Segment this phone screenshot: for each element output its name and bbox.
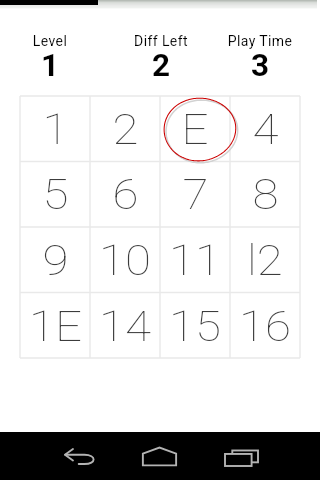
- staticText: 14: [99, 302, 151, 351]
- staticText: 16: [239, 302, 291, 351]
- button[interactable]: 1: [20, 96, 90, 161]
- staticText: 8: [252, 170, 278, 219]
- staticText: 1E: [29, 302, 82, 351]
- button[interactable]: 2: [90, 96, 160, 161]
- button[interactable]: Home: [136, 432, 184, 480]
- staticText: Level: [0, 33, 110, 49]
- staticText: 15: [169, 302, 221, 351]
- button[interactable]: 16: [230, 292, 300, 358]
- button[interactable]: Recent apps: [217, 432, 265, 480]
- staticText: 3: [200, 47, 320, 84]
- staticText: E: [181, 105, 208, 154]
- staticText: l2: [247, 236, 283, 285]
- staticText: 10: [99, 236, 151, 285]
- button[interactable]: Diff Left: [101, 33, 221, 81]
- button[interactable]: 15: [160, 292, 230, 358]
- button[interactable]: Level: [0, 33, 110, 81]
- button[interactable]: 5: [20, 161, 90, 226]
- staticText: 6: [112, 170, 138, 219]
- staticText: 4: [252, 105, 278, 154]
- staticText: Diff Left: [101, 33, 221, 49]
- button[interactable]: 14: [90, 292, 160, 358]
- staticText: 2: [112, 105, 138, 154]
- button[interactable]: 11: [160, 226, 230, 292]
- staticText: 11: [169, 236, 221, 285]
- button[interactable]: Back: [56, 432, 104, 480]
- button[interactable]: l2: [230, 226, 300, 292]
- staticText: 1: [0, 47, 110, 84]
- staticText: 2: [101, 47, 221, 84]
- button[interactable]: 7: [160, 161, 230, 226]
- button[interactable]: 6: [90, 161, 160, 226]
- staticText: 9: [42, 236, 68, 285]
- button[interactable]: 9: [20, 226, 90, 292]
- button[interactable]: 8: [230, 161, 300, 226]
- button[interactable]: 1E: [20, 292, 90, 358]
- button[interactable]: Play Time: [200, 33, 320, 81]
- staticText: 1: [42, 105, 68, 154]
- staticText: 7: [182, 170, 208, 219]
- staticText: Play Time: [200, 33, 320, 49]
- button[interactable]: 10: [90, 226, 160, 292]
- button[interactable]: E: [160, 96, 230, 161]
- staticText: 5: [42, 170, 68, 219]
- button[interactable]: 4: [230, 96, 300, 161]
